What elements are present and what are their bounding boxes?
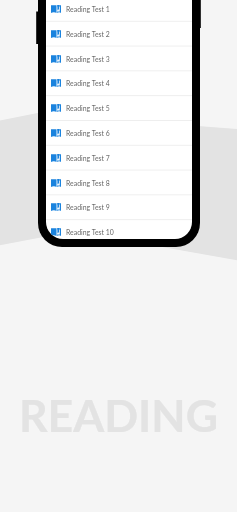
staticText: Reading Test 10 — [66, 228, 114, 236]
staticText: Reading Test 1 — [66, 5, 110, 13]
staticText: READING — [0, 388, 237, 442]
button[interactable]: Reading test — [46, 170, 192, 195]
staticText: Reading Test 5 — [66, 104, 110, 112]
button[interactable]: Reading test — [46, 120, 192, 145]
button[interactable]: Reading test — [46, 46, 192, 71]
button[interactable]: Reading test — [46, 194, 192, 219]
staticText: Reading Test 3 — [66, 55, 110, 63]
other: Reading test — [51, 203, 61, 211]
other: Reading test — [51, 154, 61, 162]
staticText: Reading Test 4 — [66, 79, 110, 87]
staticText: Reading Test 9 — [66, 203, 110, 211]
staticText: Reading Test 7 — [66, 154, 110, 162]
button[interactable]: Reading test — [46, 95, 192, 120]
other: Reading test — [51, 5, 61, 13]
other: Reading test — [51, 30, 61, 38]
button[interactable]: Reading test — [46, 145, 192, 170]
staticText: Reading Test 8 — [66, 179, 110, 187]
button[interactable]: Reading test — [46, 21, 192, 46]
other: Reading test — [51, 55, 61, 63]
other: Reading test — [51, 79, 61, 87]
staticText: Reading Test 6 — [66, 129, 110, 137]
other: Reading test — [51, 129, 61, 137]
button[interactable]: Reading test — [46, 219, 192, 239]
staticText: Reading Test 2 — [66, 30, 110, 38]
other: Reading test — [51, 104, 61, 112]
button[interactable]: Reading test — [46, 0, 192, 21]
button[interactable]: Reading test — [46, 70, 192, 95]
other: Reading test — [51, 179, 61, 187]
other: Reading test — [51, 228, 61, 236]
